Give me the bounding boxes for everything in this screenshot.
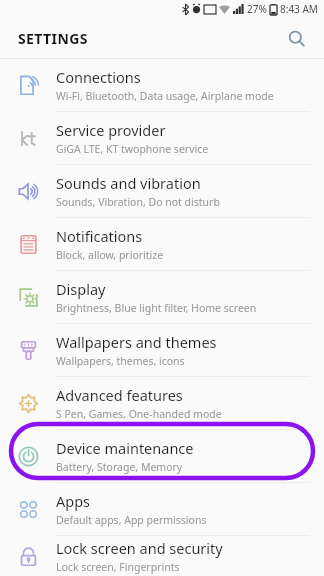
staticText: Lock screen and security: [56, 538, 223, 558]
staticText: S Pen, Games, One-handed mode: [56, 407, 222, 421]
staticText: 8:43 AM: [280, 2, 318, 16]
staticText: Display: [56, 279, 106, 299]
button[interactable]: Service provider: [0, 112, 324, 165]
staticText: Connections: [56, 67, 141, 87]
staticText: Wallpapers, themes, icons: [56, 354, 185, 368]
staticText: Brightness, Blue light filter, Home scre…: [56, 301, 257, 315]
staticText: 27%: [247, 2, 267, 16]
staticText: GiGA LTE, KT twophone service: [56, 142, 209, 156]
staticText: Sounds and vibration: [56, 173, 201, 193]
staticText: Wallpapers and themes: [56, 332, 217, 352]
staticText: Advanced features: [56, 385, 183, 405]
button[interactable]: Notifications: [0, 218, 324, 271]
button[interactable]: Search: [282, 24, 310, 52]
button[interactable]: Device maintenance: [0, 430, 324, 483]
staticText: Apps: [56, 491, 91, 511]
staticText: Sounds, Vibration, Do not disturb: [56, 195, 220, 209]
staticText: Lock screen, Fingerprints: [56, 560, 180, 574]
button[interactable]: Sounds and vibration: [0, 165, 324, 218]
button[interactable]: Connections: [0, 59, 324, 112]
staticText: Default apps, App permissions: [56, 513, 207, 527]
staticText: SETTINGS: [18, 29, 88, 48]
button[interactable]: Wallpapers and themes: [0, 324, 324, 377]
button[interactable]: Advanced features: [0, 377, 324, 430]
staticText: Service provider: [56, 120, 166, 140]
button[interactable]: Lock screen and security: [0, 536, 324, 576]
button[interactable]: Display: [0, 271, 324, 324]
button[interactable]: Apps: [0, 483, 324, 536]
staticText: Block, allow, prioritize: [56, 248, 164, 262]
staticText: Device maintenance: [56, 438, 194, 458]
staticText: Wi-Fi, Bluetooth, Data usage, Airplane m…: [56, 89, 274, 103]
staticText: Battery, Storage, Memory: [56, 460, 183, 474]
staticText: Notifications: [56, 226, 143, 246]
